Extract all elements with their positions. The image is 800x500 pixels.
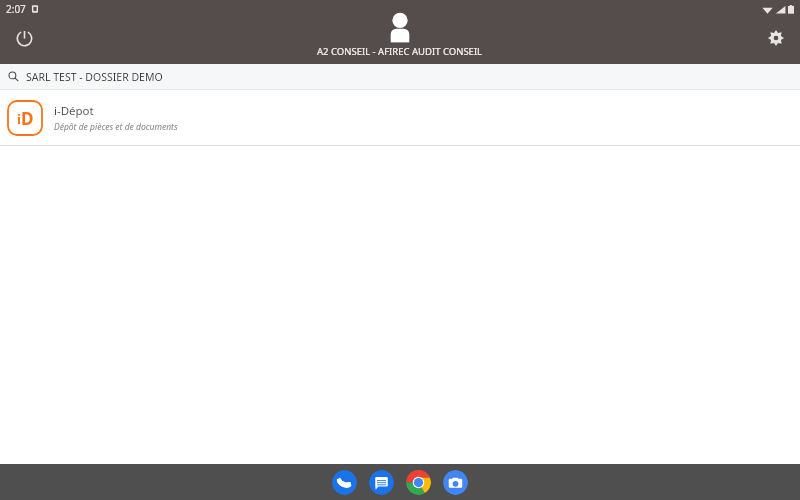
button[interactable]: A2 CONSEIL - AFIREC AUDIT CONSEIL: [317, 12, 483, 58]
button[interactable]: SARL TEST - DOSSIER DEMO: [0, 64, 800, 89]
staticText: i: [17, 110, 21, 128]
button[interactable]: Paramètres: [758, 20, 794, 56]
button[interactable]: i: [0, 90, 800, 145]
staticText: i-Dépot: [54, 103, 94, 119]
staticText: 2:07: [6, 2, 26, 16]
button[interactable]: Déconnexion: [6, 20, 42, 56]
button[interactable]: Téléphone: [332, 470, 357, 495]
button[interactable]: Appareil photo: [443, 470, 468, 495]
staticText: Dépôt de pièces et de documents: [54, 121, 178, 133]
button[interactable]: Messages: [369, 470, 394, 495]
staticText: A2 CONSEIL - AFIREC AUDIT CONSEIL: [317, 45, 483, 58]
button[interactable]: Chrome: [406, 470, 431, 495]
staticText: D: [21, 107, 34, 130]
staticText: SARL TEST - DOSSIER DEMO: [26, 70, 163, 84]
